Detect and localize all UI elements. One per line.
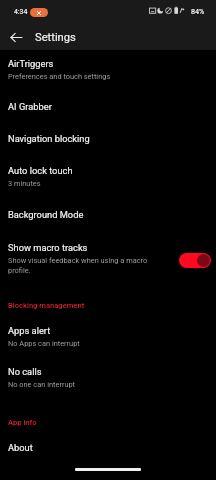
button[interactable]: Show macro tracks [0, 230, 216, 281]
staticText: App info [8, 418, 37, 427]
staticText: Show visual feedback when using a macro … [8, 256, 150, 275]
staticText: 3 minutes [8, 179, 41, 188]
button[interactable]: About [0, 431, 216, 464]
staticText: Blocking management [8, 301, 85, 310]
staticText: No Apps can interrupt [8, 339, 80, 348]
button[interactable]: No calls [0, 356, 216, 397]
staticText: AirTriggers [8, 58, 54, 69]
staticText: 4:34 [14, 8, 28, 16]
staticText: Apps alert [8, 325, 51, 336]
staticText: No calls [8, 366, 42, 377]
staticText: AI Grabber [8, 101, 52, 112]
staticText: Settings [35, 31, 76, 44]
button[interactable]: Background Mode [0, 197, 216, 230]
button[interactable]: AI Grabber [0, 90, 216, 122]
button[interactable]: Navigation blocking [0, 122, 216, 155]
staticText: 84% [191, 7, 205, 15]
button[interactable]: AirTriggers [0, 50, 216, 90]
staticText: Preferences and touch settings [8, 72, 111, 81]
staticText: Show macro tracks [8, 242, 88, 253]
staticText: Auto lock touch [8, 165, 73, 176]
staticText: No one can interrupt [8, 380, 76, 389]
button[interactable]: Back [0, 20, 31, 50]
button[interactable]: Auto lock touch [0, 155, 216, 197]
staticText: Background Mode [8, 209, 84, 220]
staticText: Navigation blocking [8, 133, 90, 144]
staticText: About [8, 442, 33, 453]
button[interactable]: Apps alert [0, 315, 216, 356]
